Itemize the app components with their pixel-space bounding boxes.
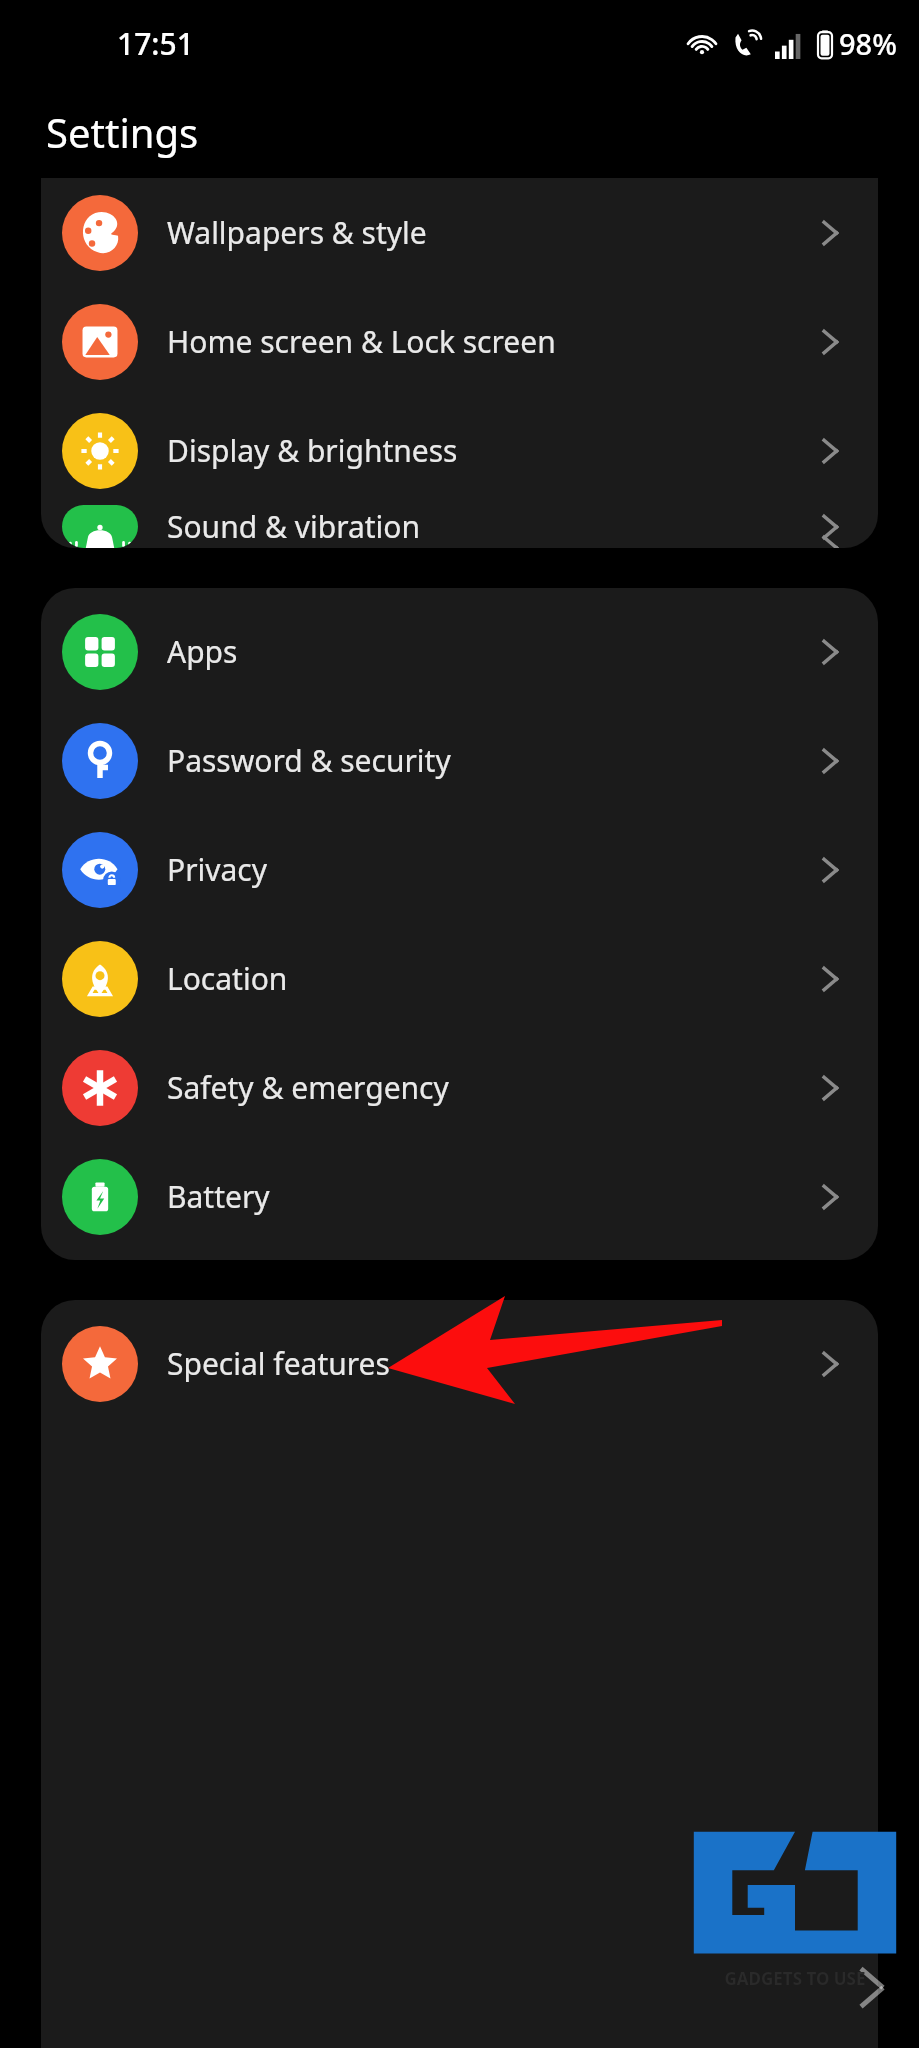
button[interactable]: Display & brightness [41,396,878,505]
staticText: Password & security [167,740,451,781]
staticText: Privacy [167,849,268,890]
staticText: Sound & vibration [167,506,421,547]
staticText: Wallpapers & style [167,212,427,253]
staticText: Display & brightness [167,430,458,471]
staticText: Apps [167,631,238,672]
button[interactable]: Special features [41,1309,878,1418]
button[interactable]: Password & security [41,706,878,815]
staticText: GADGETS TO USE [724,1967,866,1990]
button[interactable]: Battery [41,1142,878,1251]
staticText: Battery [167,1176,270,1217]
button[interactable]: Wallpapers & style [41,178,878,287]
button[interactable]: Safety & emergency [41,1033,878,1142]
button[interactable]: Location [41,924,878,1033]
staticText: Location [167,958,288,999]
button[interactable]: Home screen & Lock screen [41,287,878,396]
staticText: 98% [839,24,897,63]
button[interactable]: Apps [41,597,878,706]
staticText: Special features [167,1343,390,1384]
staticText: Home screen & Lock screen [167,321,556,362]
button[interactable]: Privacy [41,815,878,924]
staticText: 17:51 [117,23,194,64]
staticText: Safety & emergency [167,1067,449,1108]
staticText: Settings [46,105,199,159]
button[interactable]: Sound & vibration [41,505,878,548]
